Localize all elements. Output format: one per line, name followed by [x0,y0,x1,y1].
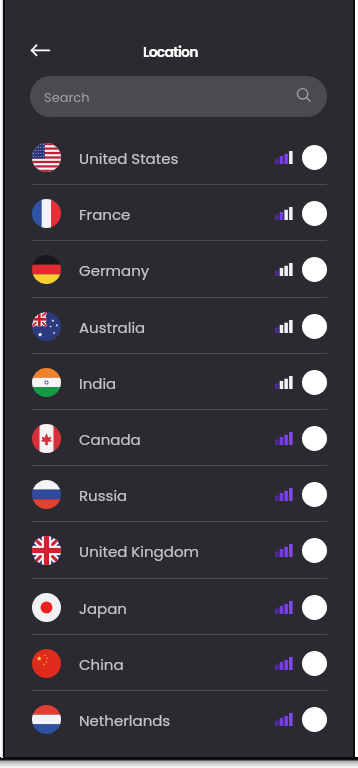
staticText: Canada [79,429,141,450]
staticText: Germany [79,260,150,281]
button[interactable]: India [5,354,353,410]
button[interactable]: Search [30,76,327,117]
staticText: China [79,654,124,675]
staticText: Search [44,88,90,106]
staticText: France [79,204,131,225]
button[interactable]: United States [5,129,353,185]
button[interactable]: Australia [5,298,353,354]
button[interactable]: Japan [5,579,353,635]
button[interactable]: China [5,635,353,691]
button[interactable]: Canada [5,410,353,466]
staticText: United States [79,148,179,169]
button[interactable]: Russia [5,466,353,522]
button[interactable]: Back [21,39,55,62]
staticText: India [79,373,117,394]
staticText: United Kingdom [79,541,199,562]
staticText: Netherlands [79,710,171,731]
button[interactable]: United Kingdom [5,522,353,578]
button[interactable]: Germany [5,241,353,297]
button[interactable]: Netherlands [5,691,353,747]
staticText: Russia [79,485,128,506]
staticText: Location [143,42,198,62]
staticText: Australia [79,317,146,338]
button[interactable]: France [5,185,353,241]
staticText: Japan [79,598,127,619]
